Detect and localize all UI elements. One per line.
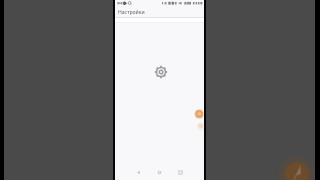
staticText: Настройки bbox=[118, 9, 145, 16]
button[interactable]: Recent apps bbox=[176, 168, 185, 177]
button[interactable]: Настройки bbox=[115, 8, 204, 17]
button[interactable]: Settings bbox=[154, 65, 168, 79]
button[interactable]: Home bbox=[155, 168, 164, 177]
button[interactable]: Back bbox=[134, 168, 143, 177]
